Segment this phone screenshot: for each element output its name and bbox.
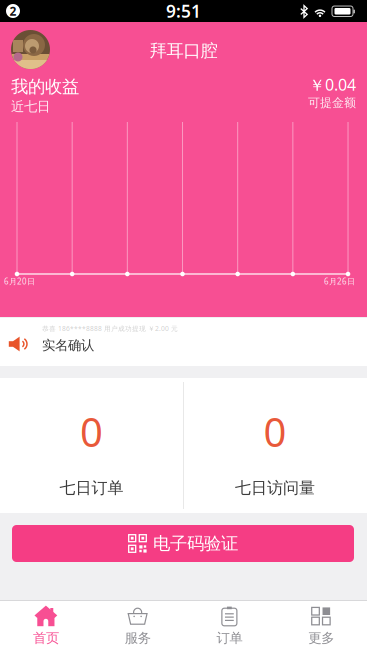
staticText: 9:51 xyxy=(166,0,201,22)
staticText: 6月20日 xyxy=(4,276,35,287)
staticText: 实名确认 xyxy=(42,337,94,353)
staticText: 近七日 xyxy=(11,98,50,115)
staticText: 恭喜 186****8888 用户成功提现 ￥2.00 元 xyxy=(42,324,178,333)
button[interactable]: 0 xyxy=(183,378,367,513)
staticText: 服务 xyxy=(125,630,151,646)
staticText: 我的收益 xyxy=(11,76,79,97)
staticText: 0 xyxy=(80,405,103,458)
staticText: 更多 xyxy=(308,630,334,646)
button[interactable]: 更多 xyxy=(275,602,367,652)
staticText: 七日订单 xyxy=(59,478,123,498)
staticText: 电子码验证 xyxy=(153,533,238,554)
button[interactable]: 0 xyxy=(0,378,183,513)
staticText: ￥0.04 xyxy=(309,74,356,95)
button[interactable]: Profile xyxy=(11,30,50,69)
staticText: 拜耳口腔 xyxy=(149,40,217,61)
button[interactable]: 订单 xyxy=(183,602,275,652)
staticText: 可提金额 xyxy=(308,95,356,110)
button[interactable]: 服务 xyxy=(92,602,184,652)
staticText: 0 xyxy=(263,405,286,458)
staticText: 订单 xyxy=(216,630,242,646)
staticText: 2 xyxy=(9,3,16,19)
button[interactable]: 电子码验证 xyxy=(12,525,354,562)
button[interactable]: 首页 xyxy=(0,602,92,652)
staticText: 6月26日 xyxy=(324,276,355,287)
button[interactable]: 实名确认 xyxy=(0,318,367,366)
staticText: 首页 xyxy=(33,630,59,646)
staticText: 七日访问量 xyxy=(235,478,315,498)
